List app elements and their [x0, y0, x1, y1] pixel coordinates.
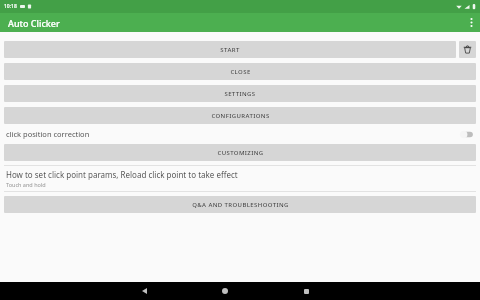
staticText: CONFIGURATIONS: [211, 112, 270, 120]
staticText: SETTINGS: [224, 90, 256, 98]
button[interactable]: How to set click point params, Reload cl…: [0, 166, 480, 191]
button[interactable]: More options: [462, 13, 480, 32]
button[interactable]: Back: [131, 282, 157, 300]
staticText: Q&A AND TROUBLESHOOTING: [192, 201, 289, 209]
staticText: CLOSE: [230, 68, 251, 76]
button[interactable]: Home: [212, 282, 238, 300]
button[interactable]: Delete: [459, 41, 476, 58]
button[interactable]: SETTINGS: [4, 85, 476, 102]
staticText: CUSTOMIZING: [217, 149, 264, 157]
staticText: click position correction: [6, 129, 90, 139]
staticText: How to set click point params, Reload cl…: [6, 169, 238, 180]
staticText: Auto Clicker: [8, 17, 60, 29]
button[interactable]: CONFIGURATIONS: [4, 107, 476, 124]
staticText: 10:18: [4, 3, 17, 10]
staticText: START: [220, 46, 240, 54]
button[interactable]: Q&A AND TROUBLESHOOTING: [4, 196, 476, 213]
staticText: Touch and hold: [6, 181, 46, 188]
button[interactable]: Recent apps: [293, 282, 319, 300]
button[interactable]: click position correction: [0, 124, 480, 144]
button[interactable]: CLOSE: [4, 63, 476, 80]
button[interactable]: CUSTOMIZING: [4, 144, 476, 161]
button[interactable]: START: [4, 41, 456, 58]
